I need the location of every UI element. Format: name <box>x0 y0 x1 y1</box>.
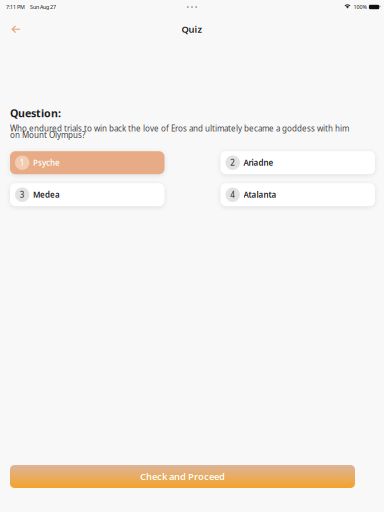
staticText: Who endured trials to win back the love … <box>10 123 349 140</box>
staticText: Quiz <box>181 23 202 35</box>
staticText: Question: <box>10 106 61 120</box>
staticText: Psyche <box>33 157 60 168</box>
staticText: Check and Proceed <box>140 470 225 483</box>
button[interactable]: 4 <box>220 183 375 206</box>
button[interactable]: 1 <box>10 151 164 174</box>
staticText: 1 <box>20 157 25 168</box>
staticText: Atalanta <box>243 189 276 200</box>
staticText: 100% <box>353 3 366 11</box>
staticText: 4 <box>230 189 235 200</box>
staticText: Ariadne <box>243 157 273 168</box>
button[interactable]: Back <box>0 19 32 39</box>
button[interactable]: Check and Proceed <box>10 465 355 488</box>
button[interactable]: 2 <box>220 151 375 174</box>
button[interactable]: 3 <box>10 183 164 206</box>
staticText: 7:11 PM <box>6 3 25 11</box>
staticText: Sun Aug 27 <box>30 3 56 11</box>
staticText: 3 <box>20 189 25 200</box>
staticText: 2 <box>230 157 235 168</box>
staticText: Medea <box>33 189 60 200</box>
